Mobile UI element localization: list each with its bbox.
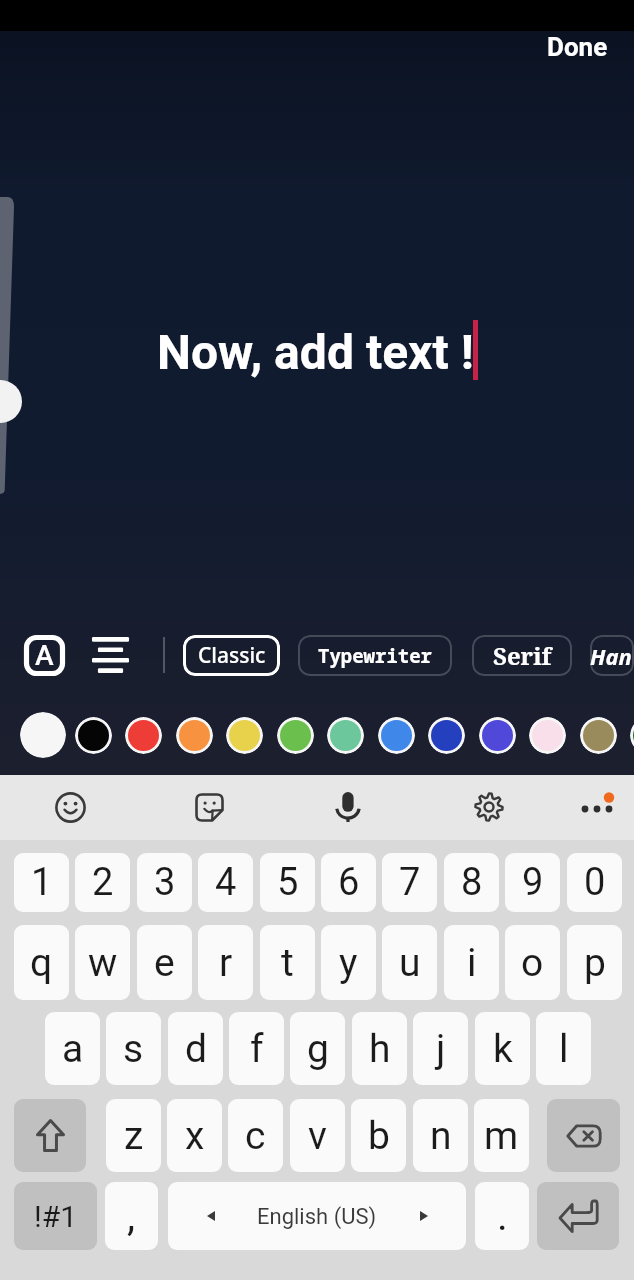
button[interactable]: Colour 7 [327, 717, 364, 754]
button[interactable]: Classic [183, 635, 280, 676]
button[interactable]: r [198, 925, 253, 1000]
button[interactable]: Colour 11 [529, 717, 566, 754]
staticText: , [127, 1192, 136, 1240]
button[interactable]: 7 [382, 853, 437, 912]
button[interactable]: Colour 3 [125, 717, 162, 754]
staticText: r [219, 940, 233, 986]
staticText: Typewriter [318, 643, 433, 669]
button[interactable]: c [228, 1099, 283, 1172]
button[interactable]: 1 [14, 853, 69, 912]
button[interactable]: o [505, 925, 560, 1000]
button[interactable]: l [536, 1012, 591, 1085]
button[interactable]: Emoji [44, 781, 96, 833]
button[interactable]: 5 [260, 853, 315, 912]
button[interactable]: . [475, 1182, 529, 1250]
staticText: u [399, 940, 421, 986]
button[interactable]: Shift [14, 1099, 86, 1172]
button[interactable]: d [168, 1012, 223, 1085]
button[interactable]: Handwritten [590, 635, 634, 676]
staticText: 9 [522, 860, 544, 905]
staticText: 6 [338, 860, 360, 905]
button[interactable]: Colour 2 [75, 717, 112, 754]
staticText: c [245, 1113, 266, 1159]
button[interactable]: Settings [463, 781, 515, 833]
staticText: Now, add text ! [157, 324, 474, 380]
button[interactable]: 2 [75, 853, 130, 912]
staticText: e [154, 940, 175, 986]
button[interactable]: 4 [198, 853, 253, 912]
button[interactable]: Colour 1 [20, 712, 66, 758]
staticText: v [308, 1113, 327, 1159]
staticText: 2 [92, 860, 114, 905]
staticText: f [250, 1026, 264, 1072]
button[interactable]: Typewriter [298, 635, 452, 676]
staticText: 7 [399, 860, 421, 905]
button[interactable]: Colour 12 [580, 717, 617, 754]
staticText: h [369, 1026, 391, 1072]
staticText: Serif [493, 639, 552, 672]
button[interactable]: 8 [444, 853, 499, 912]
button[interactable]: Colour 6 [277, 717, 314, 754]
button[interactable]: , [105, 1182, 158, 1250]
button[interactable]: Enter [537, 1182, 619, 1250]
button[interactable]: y [321, 925, 376, 1000]
button[interactable]: Text background style [24, 635, 65, 676]
staticText: s [123, 1026, 144, 1072]
staticText: d [185, 1026, 207, 1072]
button[interactable]: Colour 13 [630, 717, 634, 754]
button[interactable]: 6 [321, 853, 376, 912]
staticText: p [584, 940, 606, 986]
button[interactable]: 3 [137, 853, 192, 912]
staticText: 8 [461, 860, 483, 905]
staticText: z [124, 1113, 144, 1159]
button[interactable]: Done [533, 26, 622, 68]
button[interactable]: w [75, 925, 130, 1000]
staticText: Classic [198, 641, 266, 670]
button[interactable]: n [413, 1099, 468, 1172]
button[interactable]: Voice input [322, 781, 374, 833]
staticText: x [185, 1113, 205, 1159]
button[interactable]: 0 [567, 853, 622, 912]
button[interactable]: i [444, 925, 499, 1000]
button[interactable]: v [290, 1099, 345, 1172]
button[interactable]: g [290, 1012, 345, 1085]
button[interactable]: p [567, 925, 622, 1000]
button[interactable]: a [45, 1012, 100, 1085]
button[interactable]: Colour 9 [428, 717, 465, 754]
button[interactable]: Text alignment [88, 634, 132, 676]
other: Text size [0, 380, 22, 423]
button[interactable]: h [352, 1012, 407, 1085]
staticText: q [30, 940, 53, 986]
button[interactable]: Colour 8 [378, 717, 415, 754]
button[interactable]: j [413, 1012, 468, 1085]
staticText: !#1 [34, 1199, 78, 1234]
button[interactable]: Colour 5 [226, 717, 263, 754]
staticText: y [339, 940, 358, 986]
button[interactable]: u [382, 925, 437, 1000]
button[interactable]: q [14, 925, 69, 1000]
button[interactable]: Space [168, 1182, 466, 1250]
button[interactable]: More options [571, 781, 623, 833]
button[interactable]: Colour 10 [479, 717, 516, 754]
button[interactable]: Serif [472, 635, 572, 676]
staticText: w [88, 940, 118, 986]
button[interactable]: m [474, 1099, 529, 1172]
staticText: English (US) [257, 1204, 377, 1230]
button[interactable]: Stickers [183, 781, 235, 833]
button[interactable]: Colour 4 [176, 717, 213, 754]
button[interactable]: Backspace [547, 1099, 620, 1172]
staticText: b [368, 1113, 390, 1159]
button[interactable]: f [229, 1012, 284, 1085]
button[interactable]: b [351, 1099, 406, 1172]
staticText: 1 [31, 860, 53, 905]
button[interactable]: !#1 [14, 1182, 97, 1250]
button[interactable]: 9 [505, 853, 560, 912]
button[interactable]: t [260, 925, 315, 1000]
button[interactable]: x [167, 1099, 222, 1172]
button[interactable]: z [106, 1099, 161, 1172]
button[interactable]: s [106, 1012, 161, 1085]
staticText: 5 [277, 860, 299, 905]
staticText: 4 [215, 860, 237, 905]
button[interactable]: e [137, 925, 192, 1000]
button[interactable]: k [475, 1012, 530, 1085]
